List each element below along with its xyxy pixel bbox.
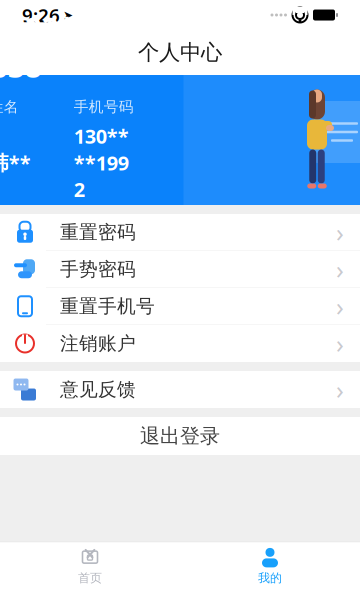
staticText: 我的 xyxy=(258,571,282,585)
button[interactable]: 退出登录 xyxy=(0,417,360,455)
staticText: › xyxy=(336,215,344,249)
button[interactable]: 意见反馈 xyxy=(0,371,360,408)
staticText: 姓名 xyxy=(0,98,19,116)
staticText: 9:26 xyxy=(22,3,60,27)
staticText: 首页 xyxy=(78,571,102,585)
staticText: 手机号码 xyxy=(74,98,134,116)
button[interactable]: 手势密码 xyxy=(0,251,360,288)
button[interactable]: 重置手机号 xyxy=(0,288,360,325)
staticText: 130****1992 xyxy=(74,123,129,202)
staticText: ➤ xyxy=(63,8,73,22)
staticText: › xyxy=(336,327,344,360)
staticText: 个人中心 xyxy=(138,39,222,66)
staticText: 退出登录 xyxy=(140,424,220,448)
button[interactable]: 我的 xyxy=(180,542,360,590)
staticText: 注销账户 xyxy=(60,332,136,355)
staticText: 重置手机号 xyxy=(60,295,155,318)
staticText: 韩** xyxy=(0,149,31,176)
staticText: 3422****6638 xyxy=(0,8,140,86)
staticText: 意见反馈 xyxy=(60,378,136,401)
button[interactable]: 重置密码 xyxy=(0,214,360,251)
staticText: 重置密码 xyxy=(60,221,136,244)
staticText: › xyxy=(336,289,344,323)
staticText: 手势密码 xyxy=(60,258,136,281)
staticText: › xyxy=(336,252,344,286)
staticText: › xyxy=(336,373,344,406)
button[interactable]: 首页 xyxy=(0,542,180,590)
button[interactable]: 注销账户 xyxy=(0,325,360,362)
